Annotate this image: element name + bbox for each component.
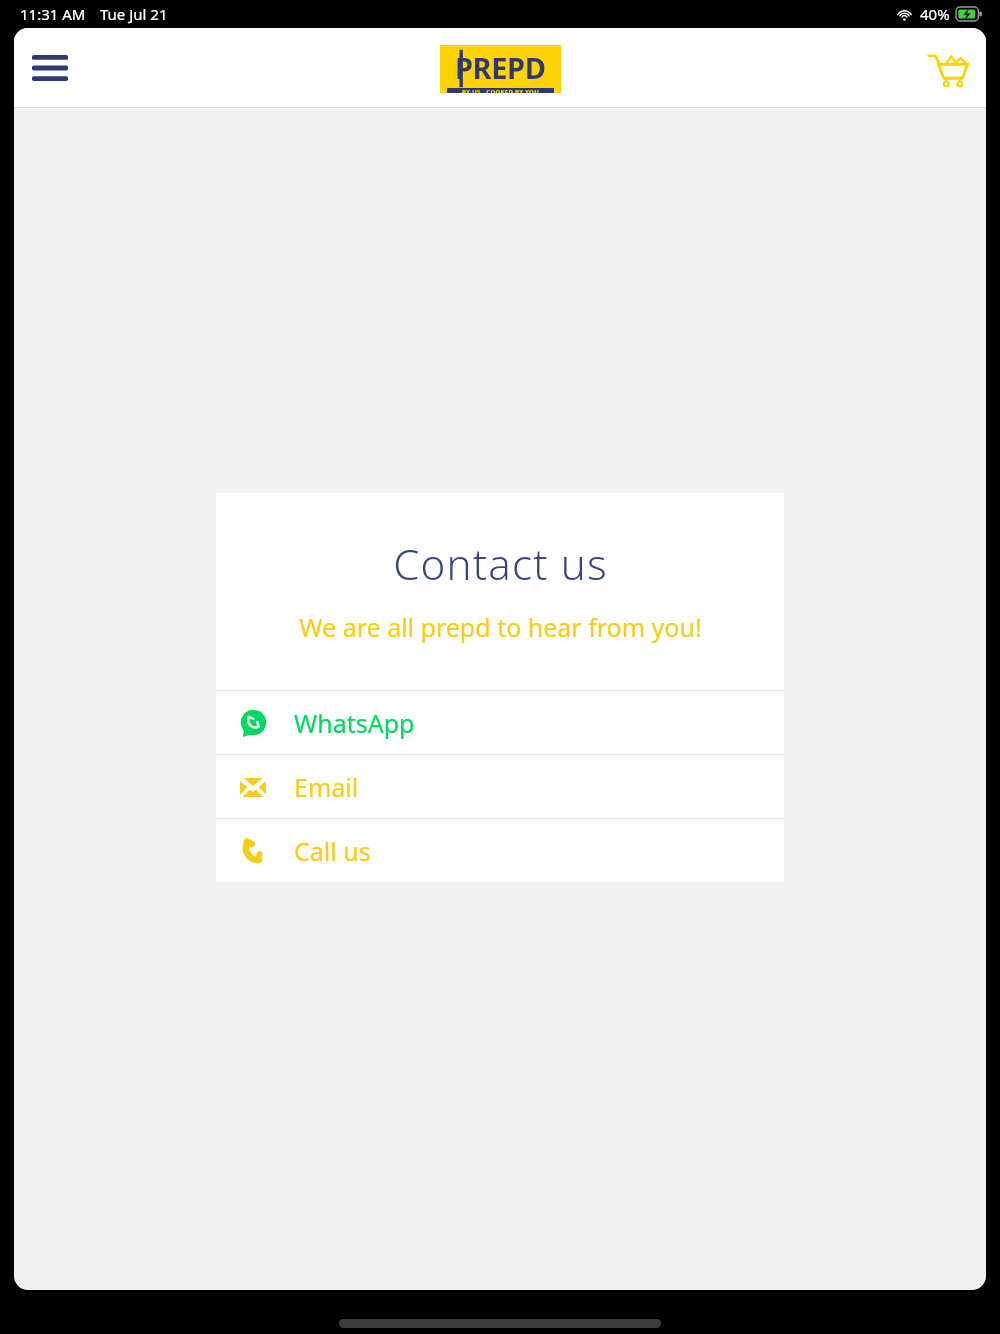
button[interactable]: Menu <box>22 40 78 96</box>
button[interactable]: PREPD <box>440 45 561 93</box>
button[interactable]: Email <box>216 755 784 818</box>
staticText: WhatsApp <box>294 706 415 740</box>
staticText: We are all prepd to hear from you! <box>299 610 702 644</box>
button[interactable]: Call us <box>216 819 784 882</box>
staticText: Contact us <box>393 535 608 592</box>
staticText: Tue Jul 21 <box>100 4 168 24</box>
button[interactable]: Cart <box>920 40 976 96</box>
staticText: PREPD <box>455 48 546 87</box>
staticText: 40% <box>920 4 950 24</box>
staticText: Call us <box>294 834 371 868</box>
button[interactable]: WhatsApp <box>216 691 784 754</box>
staticText: BY US . COOKED BY YOU <box>462 88 539 93</box>
staticText: Email <box>294 770 359 804</box>
staticText: 11:31 AM <box>20 4 86 24</box>
